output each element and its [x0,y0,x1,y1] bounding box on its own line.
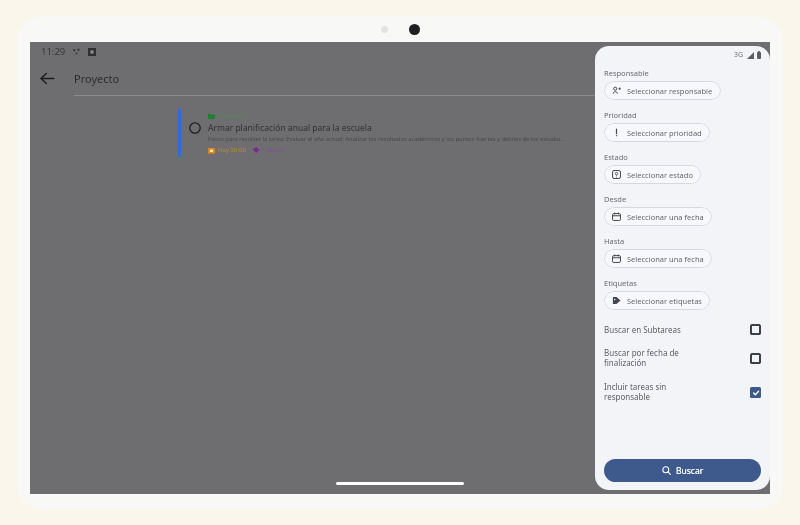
button[interactable]: Seleccionar responsable [604,81,721,100]
staticText: Responsable [604,68,649,78]
staticText: Estado [604,152,628,162]
staticText: Desde [604,194,627,204]
button[interactable]: Seleccionar una fecha [604,249,712,268]
staticText: Seleccionar una fecha [627,254,704,264]
button[interactable]: Seleccionar una fecha [604,207,712,226]
button[interactable]: Seleccionar prioridad [604,123,710,142]
staticText: Buscar [676,465,704,477]
button[interactable]: Buscar por fecha de finalización [604,347,761,369]
staticText: Incluir tareas sin responsable [604,381,667,403]
staticText: Seleccionar una fecha [627,212,704,222]
staticText: Buscar en Subtareas [604,324,681,335]
staticText: Hoy 20:00 [218,146,246,154]
staticText: Buscar por fecha de finalización [604,347,679,369]
staticText: Seleccionar responsable [627,86,713,96]
staticText: Etiquetas [604,278,637,288]
button[interactable]: Buscar en Subtareas [604,324,761,335]
staticText: Pasos para resolver la tarea: Evaluar el… [208,135,565,143]
button[interactable]: Incluir tareas sin responsable [604,381,761,403]
staticText: Mis tareas [218,112,247,120]
staticText: Armar planificación anual para la escuel… [208,122,372,134]
button[interactable]: Seleccionar etiquetas [604,291,710,310]
staticText: Seleccionar estado [627,170,693,180]
staticText: Hasta [604,236,625,246]
button[interactable]: Seleccionar estado [604,165,701,184]
staticText: 3G [734,50,744,60]
staticText: Trabajo [262,146,283,154]
staticText: Prioridad [604,110,637,120]
button[interactable]: Back [30,61,64,95]
button[interactable]: Buscar [604,459,761,482]
staticText: Seleccionar prioridad [627,128,702,138]
staticText: Seleccionar etiquetas [627,296,702,306]
staticText: 11:29 [41,45,66,58]
staticText: Proyecto [74,71,120,86]
